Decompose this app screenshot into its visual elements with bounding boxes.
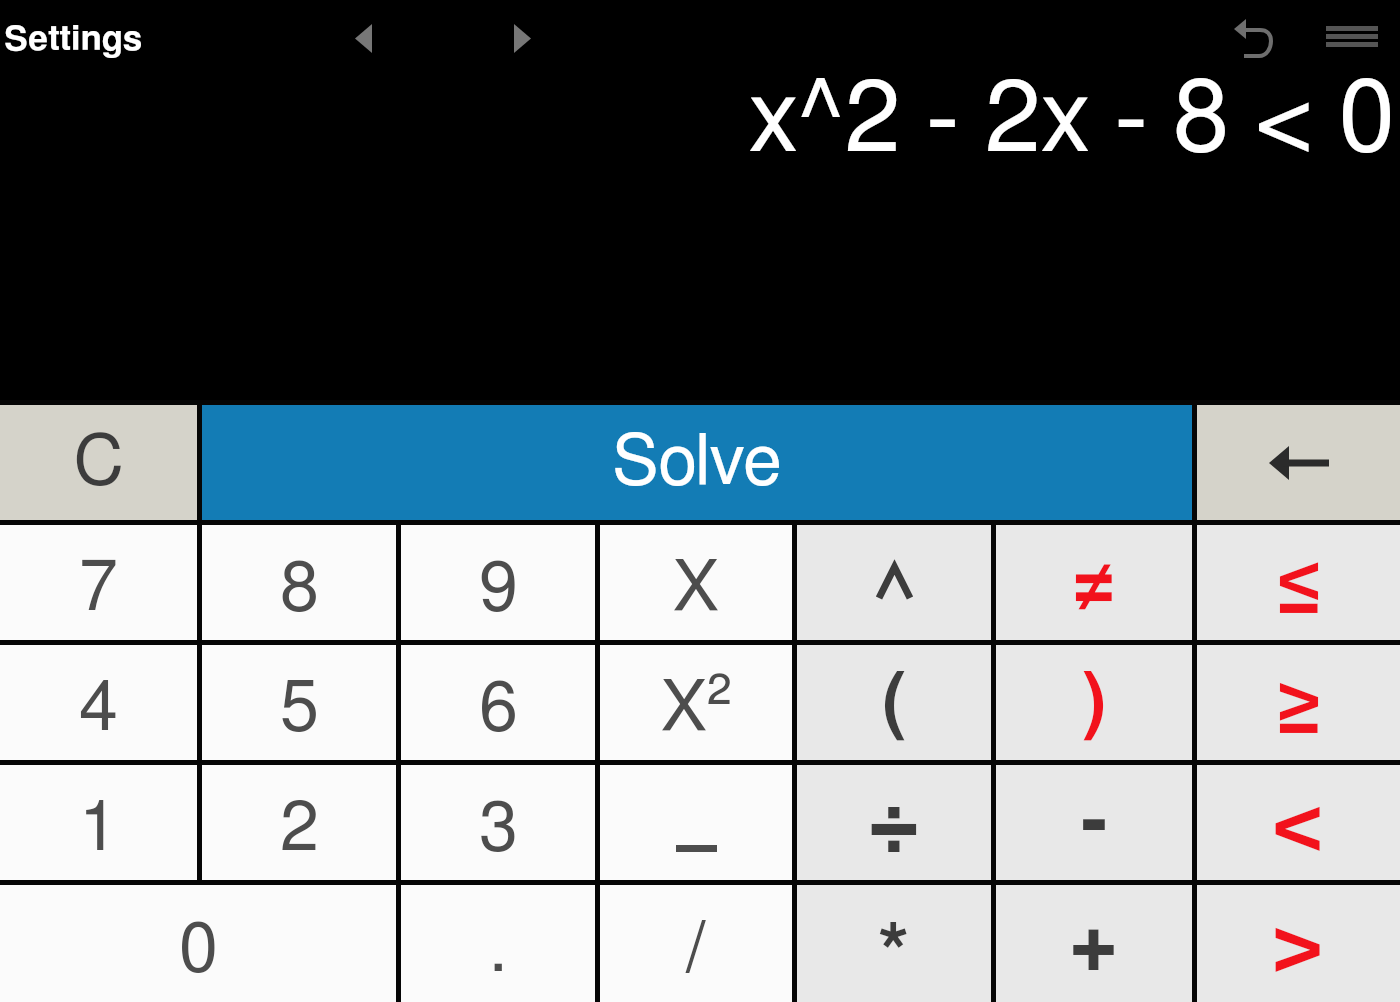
staticText: 1 <box>79 794 118 864</box>
staticText: x^2 - 2x - 8 < 0 <box>749 70 1395 171</box>
button[interactable]: X <box>600 525 792 640</box>
staticText: 3 <box>479 794 518 864</box>
button[interactable]: 0 <box>0 885 396 1002</box>
button[interactable]: 4 <box>0 645 197 760</box>
button[interactable]: 6 <box>401 645 595 760</box>
button[interactable]: * <box>797 885 991 1002</box>
button[interactable]: ≥ <box>1197 645 1400 760</box>
button[interactable]: < <box>1197 765 1400 880</box>
staticText: ≥ <box>1276 668 1322 746</box>
button[interactable]: ÷ <box>797 765 991 880</box>
staticText: 9 <box>479 554 518 624</box>
button[interactable]: + <box>996 885 1192 1002</box>
button[interactable]: . <box>401 885 595 1002</box>
button[interactable]: X² <box>600 645 792 760</box>
staticText: / <box>686 915 706 985</box>
staticText: 6 <box>479 674 518 744</box>
button[interactable]: - <box>996 765 1192 880</box>
button[interactable]: 8 <box>202 525 396 640</box>
staticText: < <box>1272 778 1325 868</box>
button[interactable] <box>1326 26 1378 47</box>
staticText: ≤ <box>1276 548 1322 626</box>
button[interactable] <box>1233 17 1275 59</box>
button[interactable] <box>1197 405 1400 520</box>
staticText: > <box>1272 899 1325 989</box>
button[interactable] <box>355 24 372 53</box>
staticText: C <box>74 428 124 498</box>
button[interactable] <box>600 765 792 880</box>
staticText: Solve <box>612 428 782 498</box>
staticText: ≠ <box>1072 546 1116 620</box>
staticText: * <box>878 916 910 996</box>
button[interactable]: ) <box>996 645 1192 760</box>
staticText: 0 <box>179 915 218 985</box>
staticText: - <box>1081 783 1108 863</box>
button[interactable]: 9 <box>401 525 595 640</box>
staticText: 4 <box>79 674 118 744</box>
button[interactable]: > <box>1197 885 1400 1002</box>
button[interactable]: ≠ <box>996 525 1192 640</box>
button[interactable]: ( <box>797 645 991 760</box>
button[interactable]: 1 <box>0 765 197 880</box>
staticText: 5 <box>280 674 319 744</box>
button[interactable]: ≤ <box>1197 525 1400 640</box>
button[interactable]: C <box>0 405 197 520</box>
button[interactable]: 3 <box>401 765 595 880</box>
staticText: ) <box>1082 666 1107 740</box>
staticText: + <box>1069 902 1119 986</box>
button[interactable]: 2 <box>202 765 396 880</box>
staticText: X <box>673 554 719 624</box>
button[interactable]: / <box>600 885 792 1002</box>
staticText: ÷ <box>867 777 921 869</box>
staticText: . <box>489 915 507 985</box>
staticText: ( <box>882 666 907 740</box>
button[interactable]: Solve <box>202 405 1192 520</box>
button[interactable]: Settings <box>4 22 143 57</box>
button[interactable]: 5 <box>202 645 396 760</box>
staticText: 7 <box>79 554 118 624</box>
button[interactable] <box>514 24 531 53</box>
button[interactable]: 7 <box>0 525 197 640</box>
button[interactable] <box>797 525 991 640</box>
staticText: X² <box>661 674 732 744</box>
staticText: 2 <box>280 794 319 864</box>
staticText: 8 <box>280 554 319 624</box>
